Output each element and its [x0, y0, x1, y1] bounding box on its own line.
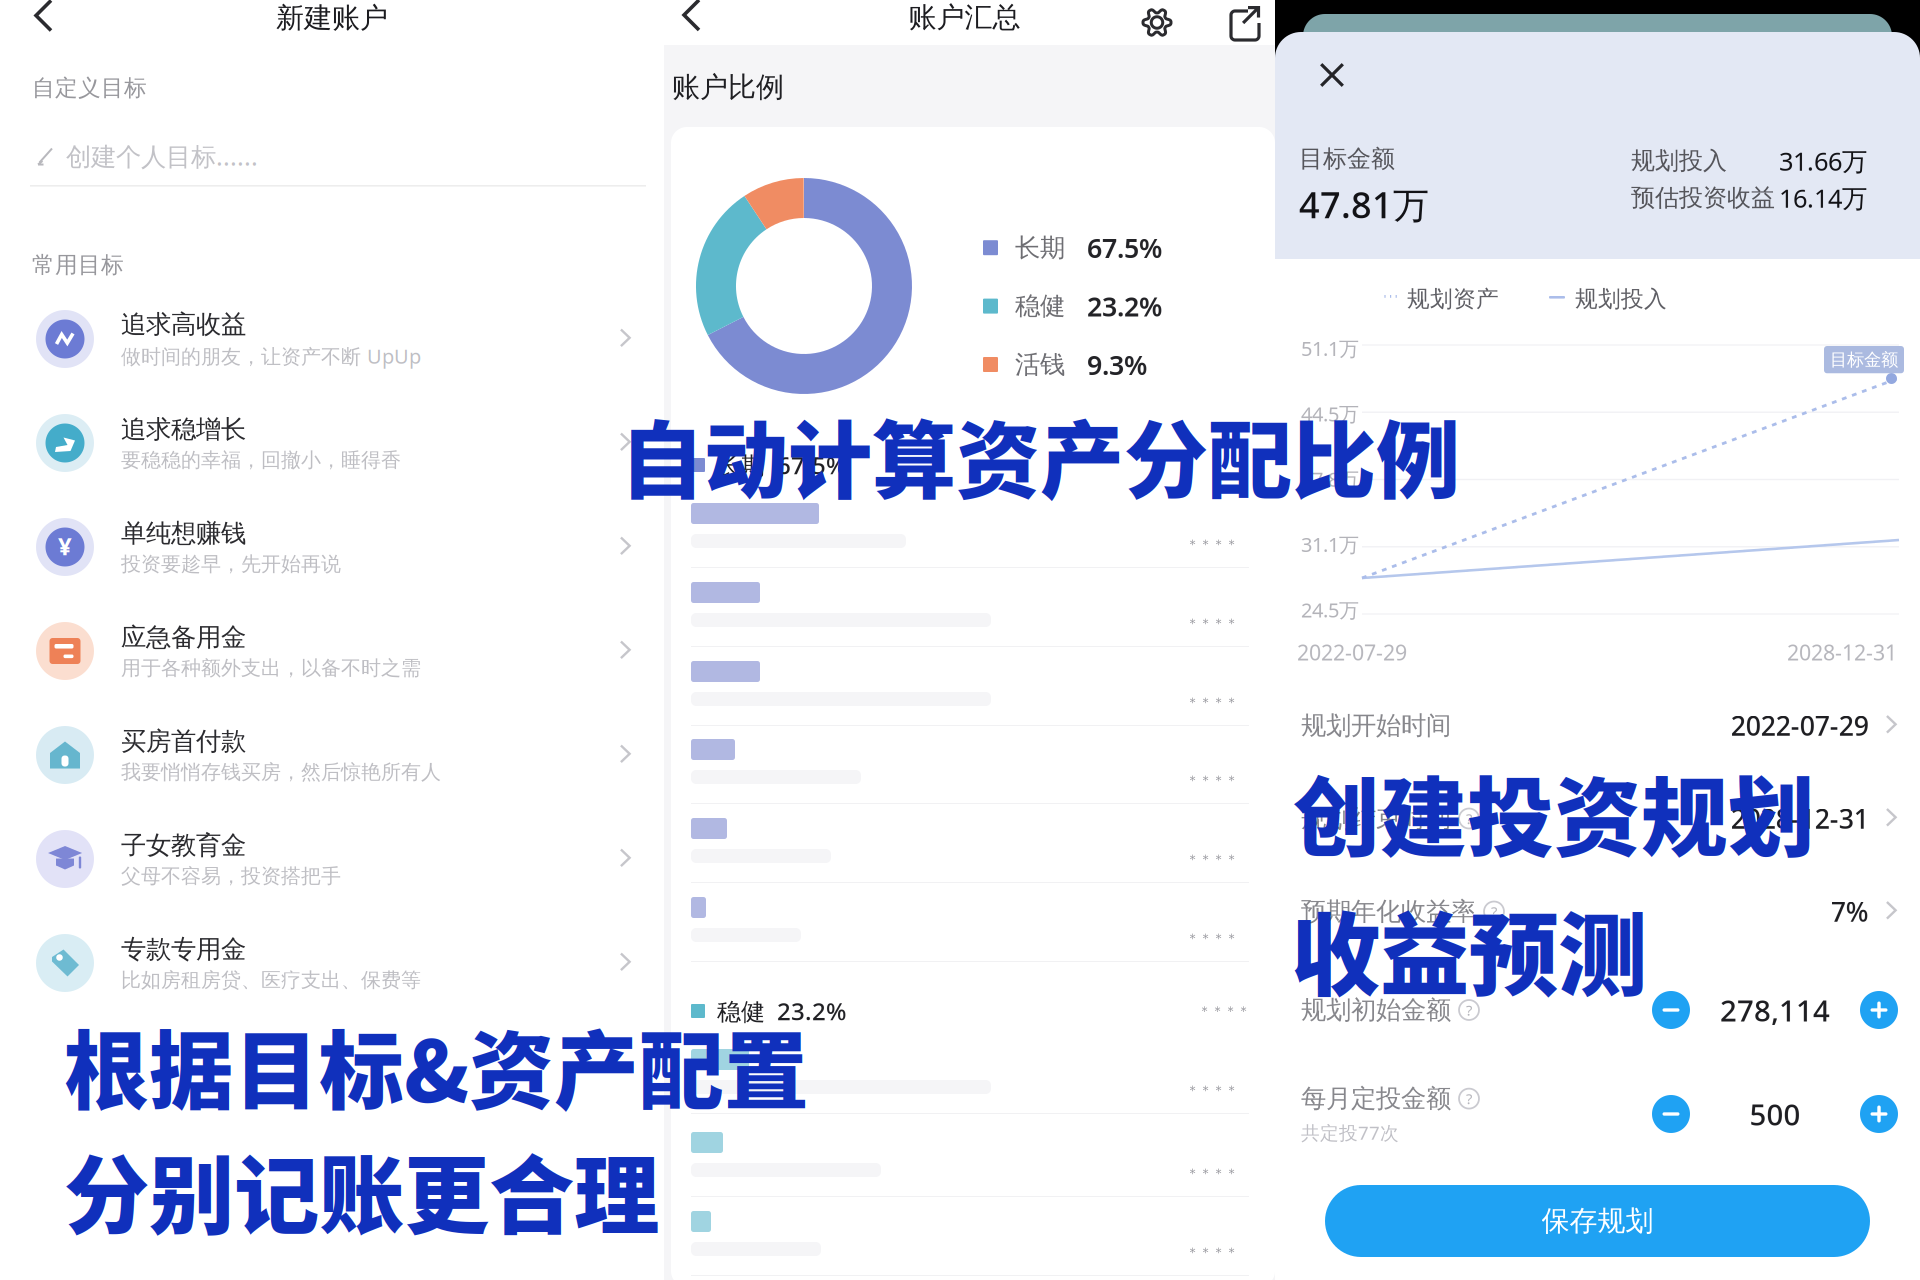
staticText: 目标金额: [1830, 349, 1898, 370]
staticText: ＊＊＊＊: [1186, 536, 1238, 552]
staticText: ＊＊＊＊: [1186, 615, 1238, 631]
button[interactable]: ¥: [0, 495, 664, 599]
button[interactable]: 规划开始时间: [1275, 679, 1920, 772]
staticText: 子女教育金: [121, 830, 246, 861]
staticText: 每月定投金额: [1301, 1083, 1451, 1114]
button[interactable]: 预期年化收益率: [1275, 865, 1920, 958]
staticText: 44.5万: [1301, 400, 1359, 427]
staticText: 规划结束时间: [1301, 803, 1451, 834]
staticText: 2022-07-29: [1297, 638, 1407, 666]
staticText: 规划资产: [1407, 285, 1499, 313]
button[interactable]: 保存规划: [1325, 1185, 1870, 1257]
staticText: 24.5万: [1301, 596, 1359, 623]
button[interactable]: 买房首付款: [0, 703, 664, 807]
staticText: 规划投入: [1575, 285, 1667, 313]
staticText: 31.66万: [1779, 144, 1867, 178]
staticText: 分别记账更合理: [64, 1128, 659, 1252]
staticText: ?: [1466, 1089, 1472, 1108]
staticText: 长期: [1015, 232, 1065, 263]
staticText: 稳健: [1015, 291, 1065, 322]
staticText: 新建账户: [276, 1, 388, 35]
staticText: 2028-12-31: [1787, 638, 1897, 666]
staticText: 投资要趁早，先开始再说: [121, 552, 341, 576]
staticText: ＊＊＊＊: [1186, 772, 1238, 788]
button[interactable]: Back: [659, 0, 725, 39]
staticText: ＊＊＊＊: [1186, 1244, 1238, 1260]
staticText: 自定义目标: [32, 74, 147, 102]
staticText: 规划初始金额: [1301, 994, 1451, 1025]
button[interactable]: Close: [1303, 49, 1361, 101]
staticText: ?: [1491, 902, 1497, 921]
staticText: 稳健 23.2%: [717, 995, 846, 1027]
staticText: 共定投77次: [1301, 1120, 1399, 1145]
staticText: 2028-12-31: [1731, 801, 1869, 836]
staticText: 7%: [1831, 894, 1869, 929]
staticText: 保存规划: [1541, 1204, 1653, 1238]
staticText: ＊＊＊＊: [1198, 1003, 1250, 1019]
staticText: ＊＊＊＊: [1186, 851, 1238, 867]
staticText: 父母不容易，投资搭把手: [121, 864, 341, 888]
staticText: 500: [1749, 1094, 1800, 1133]
staticText: 做时间的朋友，让资产不断 UpUp: [121, 343, 421, 369]
staticText: 账户汇总: [908, 0, 1020, 35]
staticText: 比如房租房贷、医疗支出、保费等: [121, 968, 421, 992]
staticText: 预估投资收益: [1631, 183, 1775, 212]
staticText: 规划投入: [1631, 146, 1727, 175]
staticText: 预期年化收益率: [1301, 896, 1476, 927]
staticText: 专款专用金: [121, 934, 246, 965]
staticText: 9.3%: [1087, 347, 1147, 382]
button[interactable]: 子女教育金: [0, 807, 664, 911]
button[interactable]: Increase 规划初始金额: [1860, 991, 1898, 1029]
button[interactable]: 创建个人目标......: [36, 130, 636, 182]
button[interactable]: 规划结束时间: [1275, 772, 1920, 865]
staticText: 我要悄悄存钱买房，然后惊艳所有人: [121, 760, 441, 784]
staticText: 追求高收益: [121, 309, 246, 340]
staticText: 创建个人目标......: [66, 139, 258, 173]
staticText: ＊＊＊＊: [1186, 930, 1238, 946]
staticText: 收益预测: [1291, 884, 1647, 1013]
staticText: ?: [1466, 1000, 1472, 1020]
staticText: 账户比例: [672, 70, 784, 104]
staticText: 用于各种额外支出，以备不时之需: [121, 656, 421, 680]
staticText: 买房首付款: [121, 726, 246, 757]
staticText: 23.2%: [1087, 288, 1162, 324]
button[interactable]: Back: [9, 0, 79, 40]
staticText: 2022-07-29: [1731, 708, 1869, 743]
staticText: 应急备用金: [121, 622, 246, 653]
staticText: 创建投资规划: [1293, 749, 1815, 874]
staticText: 长期 67.5%: [717, 449, 846, 481]
staticText: ?: [1466, 809, 1472, 828]
staticText: 活钱: [1015, 349, 1065, 380]
button[interactable]: 追求稳增长: [0, 391, 664, 495]
staticText: 51.1万: [1301, 335, 1359, 362]
button[interactable]: 应急备用金: [0, 599, 664, 703]
staticText: 根据目标&资产配置: [64, 1004, 809, 1127]
staticText: 16.14万: [1779, 181, 1867, 215]
button[interactable]: Share: [1219, 0, 1271, 45]
button[interactable]: Decrease 每月定投金额: [1652, 1095, 1690, 1133]
staticText: 47.81万: [1299, 180, 1429, 228]
staticText: ＊＊＊＊: [1186, 1082, 1238, 1098]
button[interactable]: 专款专用金: [0, 911, 664, 1015]
button[interactable]: Decrease 规划初始金额: [1652, 991, 1690, 1029]
staticText: 常用目标: [32, 251, 124, 279]
staticText: 要稳稳的幸福，回撤小，睡得香: [121, 448, 401, 472]
staticText: ¥: [58, 530, 72, 562]
staticText: 37.8万: [1301, 466, 1359, 492]
button[interactable]: 追求高收益: [0, 287, 664, 391]
button[interactable]: Increase 每月定投金额: [1860, 1095, 1898, 1133]
button[interactable]: Settings: [1130, 0, 1184, 45]
staticText: 目标金额: [1299, 144, 1395, 173]
staticText: 278,114: [1720, 990, 1830, 1029]
staticText: 规划开始时间: [1301, 710, 1451, 741]
staticText: 单纯想赚钱: [121, 518, 246, 549]
staticText: ＊＊＊＊: [1186, 694, 1238, 710]
staticText: 追求稳增长: [121, 414, 246, 445]
staticText: 31.1万: [1301, 531, 1359, 558]
staticText: ＊＊＊＊: [1186, 1165, 1238, 1181]
staticText: 自动计算资产分配比例: [620, 394, 1460, 516]
staticText: 67.5%: [1087, 230, 1162, 265]
